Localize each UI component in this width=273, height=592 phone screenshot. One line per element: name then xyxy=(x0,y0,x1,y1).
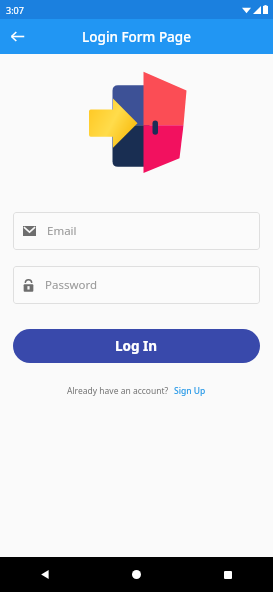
staticText: Login Form Page xyxy=(82,28,191,46)
button[interactable]: Email xyxy=(13,212,260,250)
button[interactable]: Password xyxy=(13,266,260,304)
staticText: Already have an account? xyxy=(67,385,169,397)
staticText: Sign Up xyxy=(174,385,206,397)
staticText: 3:07 xyxy=(6,4,24,16)
button[interactable]: Back xyxy=(0,19,35,54)
button[interactable]: Home xyxy=(91,557,182,592)
button[interactable]: Back xyxy=(0,557,91,592)
button[interactable]: Sign Up xyxy=(174,385,206,397)
staticText: Log In xyxy=(115,337,158,355)
button[interactable]: Recent apps xyxy=(182,557,273,592)
button[interactable]: Log In xyxy=(13,329,260,363)
staticText: Email xyxy=(47,223,77,239)
staticText: Password xyxy=(45,277,98,293)
